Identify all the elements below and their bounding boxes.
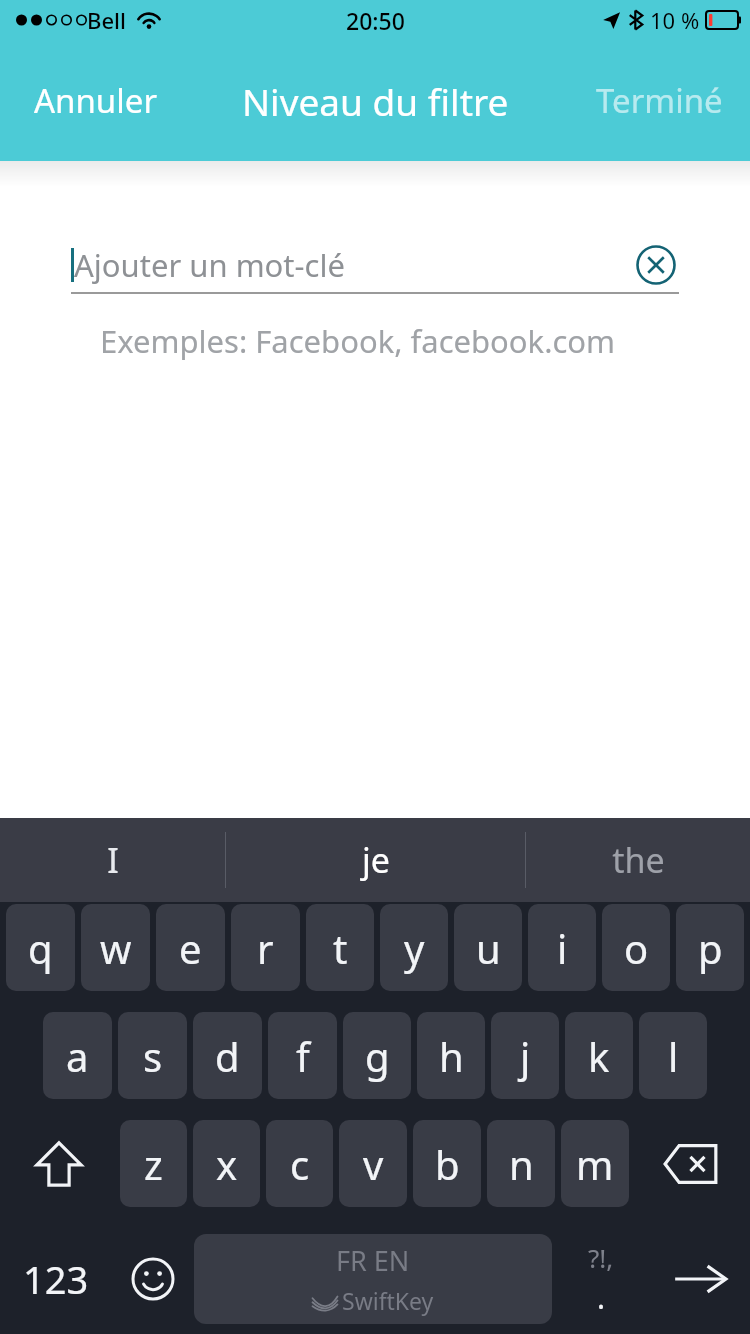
button[interactable]: k [565, 1012, 633, 1099]
staticText: y [404, 921, 425, 975]
button[interactable]: Entrée [650, 1228, 750, 1330]
button[interactable]: h [417, 1012, 485, 1099]
button[interactable]: 123 [0, 1228, 112, 1330]
staticText: b [435, 1137, 460, 1191]
staticText: g [365, 1029, 390, 1083]
staticText: d [215, 1029, 240, 1083]
button[interactable]: a [43, 1012, 112, 1099]
staticText: Niveau du filtre [242, 76, 509, 126]
staticText: f [296, 1029, 310, 1083]
staticText: 20:50 [346, 5, 405, 36]
button[interactable]: z [120, 1120, 187, 1207]
staticText: p [698, 921, 723, 975]
button[interactable]: q [6, 904, 75, 991]
staticText: w [100, 921, 132, 975]
button[interactable]: l [639, 1012, 707, 1099]
staticText: SwiftKey [342, 1285, 434, 1316]
staticText: FR EN [336, 1242, 410, 1279]
staticText: c [290, 1137, 310, 1191]
button[interactable]: u [454, 904, 522, 991]
button[interactable]: Effacer [633, 242, 679, 288]
button[interactable]: the [526, 818, 750, 902]
staticText: z [144, 1137, 163, 1191]
staticText: Annuler [34, 78, 158, 123]
staticText: e [179, 921, 202, 975]
staticText: the [612, 837, 665, 883]
button[interactable]: j [491, 1012, 559, 1099]
button[interactable]: c [266, 1120, 333, 1207]
staticText: q [28, 921, 53, 975]
staticText: Bell [87, 5, 126, 35]
staticText: Terminé [596, 78, 723, 123]
staticText: 123 [23, 1253, 89, 1305]
button[interactable]: f [268, 1012, 337, 1099]
button[interactable]: I [0, 818, 225, 902]
button[interactable]: n [487, 1120, 555, 1207]
button[interactable]: ?!, [552, 1228, 650, 1330]
staticText: r [257, 921, 274, 975]
staticText: a [66, 1029, 89, 1083]
staticText: I [107, 837, 119, 883]
button[interactable]: v [339, 1120, 407, 1207]
staticText: s [143, 1029, 163, 1083]
button[interactable]: w [81, 904, 150, 991]
staticText: je [362, 837, 390, 883]
button[interactable]: Supprimer [632, 1120, 750, 1207]
button[interactable]: p [676, 904, 744, 991]
button[interactable]: t [306, 904, 374, 991]
button[interactable]: r [231, 904, 300, 991]
button[interactable]: y [380, 904, 448, 991]
staticText: 10 % [650, 5, 700, 35]
staticText: j [520, 1029, 531, 1083]
staticText: x [216, 1137, 238, 1191]
button[interactable]: s [118, 1012, 187, 1099]
staticText: t [333, 921, 348, 975]
button[interactable]: Annuler [32, 70, 160, 131]
button[interactable]: e [156, 904, 225, 991]
staticText: ?!, [588, 1240, 614, 1275]
button[interactable]: FR EN [194, 1234, 552, 1324]
staticText: u [476, 921, 501, 975]
staticText: l [668, 1029, 679, 1083]
staticText: v [363, 1137, 384, 1191]
button[interactable]: d [193, 1012, 262, 1099]
button[interactable]: Emoji [112, 1228, 194, 1330]
staticText: o [624, 921, 649, 975]
button[interactable]: b [413, 1120, 481, 1207]
staticText: Exemples: Facebook, facebook.com [100, 320, 616, 362]
staticText: Ajouter un mot-clé [74, 244, 345, 286]
button[interactable]: je [226, 818, 525, 902]
button[interactable]: o [602, 904, 670, 991]
staticText: i [557, 921, 568, 975]
staticText: . [597, 1277, 606, 1318]
button[interactable]: x [193, 1120, 260, 1207]
staticText: n [509, 1137, 534, 1191]
button[interactable]: m [561, 1120, 629, 1207]
button[interactable]: Terminé [594, 70, 725, 131]
button[interactable]: g [343, 1012, 411, 1099]
staticText: k [588, 1029, 610, 1083]
button[interactable]: Maj [0, 1120, 117, 1207]
staticText: m [576, 1137, 614, 1191]
button[interactable]: i [528, 904, 596, 991]
staticText: h [439, 1029, 464, 1083]
